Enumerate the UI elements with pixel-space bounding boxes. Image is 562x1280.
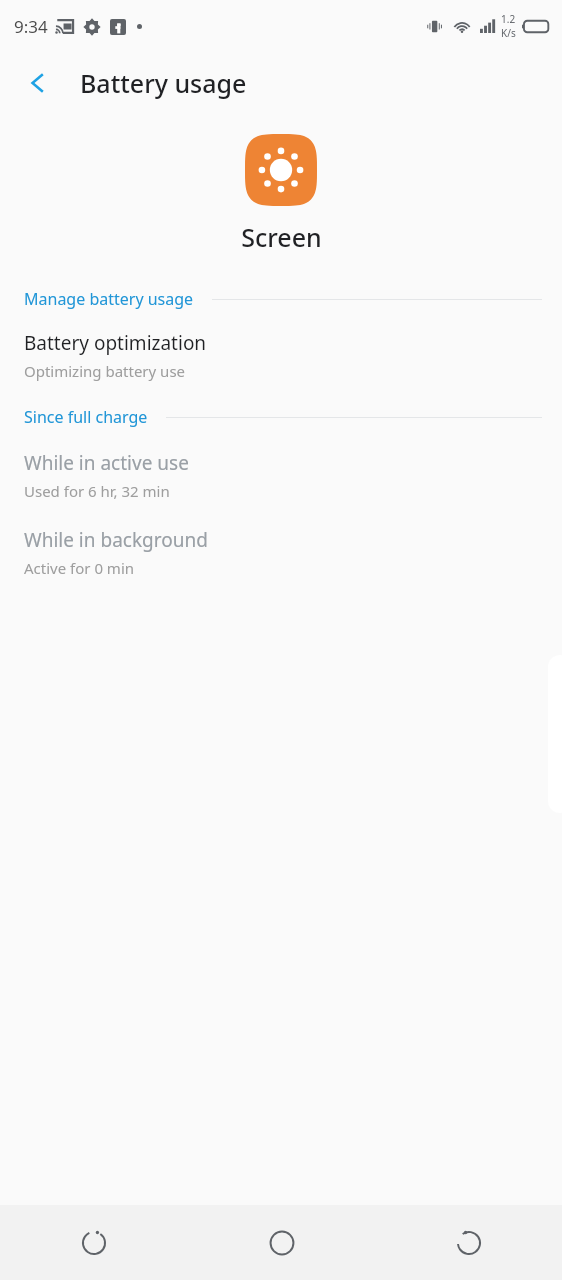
staticText: Used for 6 hr, 32 min [24,481,170,501]
button[interactable]: Home [188,1205,375,1280]
staticText: While in background [24,527,208,553]
staticText: K/s [501,26,516,40]
staticText: While in active use [24,450,189,476]
staticText: 1.2 [501,12,516,26]
button[interactable]: Recents [0,1205,188,1280]
staticText: Active for 0 min [24,558,135,578]
button[interactable]: While in background [0,527,562,578]
staticText: Battery optimization [24,330,207,356]
staticText: Manage battery usage [24,288,194,310]
staticText: 9:34 [14,15,48,38]
staticText: Optimizing battery use [24,361,186,381]
staticText: Since full charge [24,406,148,428]
button[interactable]: Battery optimization [0,330,562,381]
staticText: Battery usage [80,66,247,100]
button[interactable]: While in active use [0,450,562,501]
button[interactable]: Back [375,1205,562,1280]
staticText: Screen [241,220,322,254]
button[interactable]: Back [16,61,60,105]
